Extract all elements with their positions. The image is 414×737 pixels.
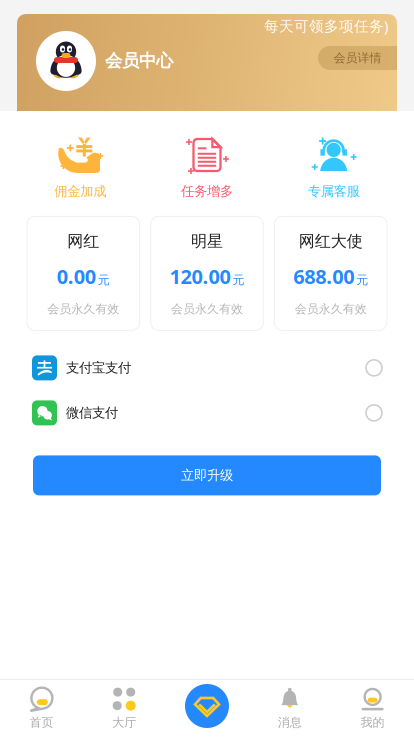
staticText: 任务增多: [181, 183, 233, 199]
staticText: 120.00: [169, 263, 230, 290]
staticText: 佣金加成: [54, 183, 106, 199]
button[interactable]: 明星: [151, 216, 263, 330]
button[interactable]: 会员: [185, 684, 229, 728]
button[interactable]: 我的: [331, 687, 414, 730]
staticText: 明星: [191, 231, 223, 251]
staticText: 会员详情: [333, 51, 381, 65]
staticText: 0.00: [57, 263, 96, 290]
button[interactable]: 佣金加成: [17, 137, 144, 199]
staticText: 会员永久有效: [171, 302, 243, 316]
button[interactable]: 任务增多: [144, 137, 270, 199]
button[interactable]: 专属客服: [270, 137, 397, 199]
staticText: 首页: [29, 715, 53, 730]
staticText: 会员永久有效: [47, 302, 119, 316]
button[interactable]: 支付宝支付: [0, 345, 414, 390]
button[interactable]: 网红大使: [274, 216, 387, 330]
button[interactable]: 网红: [27, 216, 140, 330]
staticText: 元: [232, 273, 244, 287]
staticText: 网红: [67, 231, 99, 251]
staticText: 专属客服: [308, 183, 360, 199]
staticText: 立即升级: [181, 467, 233, 484]
staticText: 元: [356, 273, 368, 287]
button[interactable]: 微信支付: [0, 390, 414, 435]
staticText: 每天可领多项任务): [264, 16, 388, 35]
staticText: 我的: [361, 715, 385, 730]
staticText: 消息: [278, 715, 302, 730]
staticText: 会员中心: [105, 50, 173, 71]
button[interactable]: 消息: [248, 687, 331, 730]
staticText: 元: [98, 273, 110, 287]
button[interactable]: 会员详情: [318, 46, 397, 70]
button[interactable]: 立即升级: [33, 455, 381, 495]
staticText: 会员永久有效: [295, 302, 367, 316]
button[interactable]: 首页: [0, 687, 83, 730]
button[interactable]: 大厅: [83, 687, 166, 730]
staticText: 688.00: [293, 263, 354, 290]
staticText: 微信支付: [66, 405, 118, 421]
staticText: 支付宝支付: [66, 360, 131, 376]
staticText: 网红大使: [299, 231, 363, 251]
staticText: 大厅: [112, 715, 136, 730]
